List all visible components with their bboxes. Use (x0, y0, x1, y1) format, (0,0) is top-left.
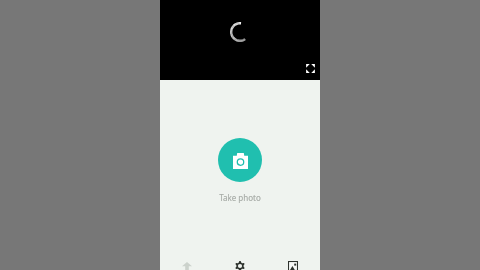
button[interactable]: Gallery (284, 257, 302, 270)
button[interactable]: Fullscreen (305, 63, 316, 74)
staticText: Take photo (160, 192, 320, 203)
button[interactable]: Upload (178, 257, 196, 270)
button[interactable]: Settings (231, 257, 249, 270)
button[interactable] (218, 138, 262, 182)
